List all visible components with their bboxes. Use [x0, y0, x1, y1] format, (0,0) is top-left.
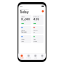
button[interactable]: Me: [39, 54, 46, 60]
staticText: Steps: [21, 16, 25, 18]
staticText: 10 m: [33, 40, 36, 42]
staticText: 9:41: [20, 5, 23, 7]
staticText: Mind: [33, 39, 36, 40]
staticText: WEDNESDAY: [20, 9, 29, 10]
staticText: 8,240: [21, 17, 30, 21]
staticText: 430: [33, 17, 39, 21]
staticText: 1.2 L: [21, 40, 24, 42]
staticText: Today: [20, 10, 29, 14]
button[interactable]: Trend: [25, 54, 32, 60]
button[interactable]: Home: [18, 54, 25, 60]
staticText: Sleep: [21, 29, 25, 31]
button[interactable]: Log: [32, 54, 39, 60]
staticText: 72: [33, 31, 35, 33]
staticText: 7h 12m: [21, 31, 26, 33]
staticText: Me: [41, 57, 43, 59]
staticText: Water: [21, 39, 25, 40]
staticText: Home: [20, 57, 24, 59]
staticText: Heart: [33, 29, 37, 31]
staticText: Energy: [33, 16, 39, 18]
